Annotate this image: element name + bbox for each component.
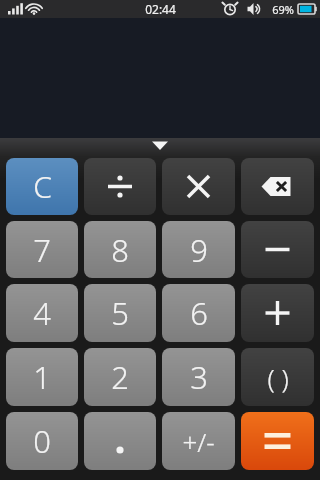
staticText: 0 — [33, 420, 51, 462]
staticText: 69% — [272, 2, 294, 17]
button[interactable]: 5 — [84, 284, 156, 342]
button[interactable]: Plus — [241, 284, 314, 342]
button[interactable]: 2 — [84, 348, 156, 406]
button[interactable]: Multiply — [162, 158, 235, 215]
button[interactable]: Equals — [241, 412, 314, 470]
button[interactable]: C — [6, 158, 78, 215]
staticText: 1 — [33, 356, 51, 398]
button[interactable]: Minus — [241, 221, 314, 278]
staticText: 2 — [111, 356, 129, 398]
button[interactable]: 3 — [162, 348, 235, 406]
button[interactable]: 6 — [162, 284, 235, 342]
staticText: 9 — [190, 229, 208, 271]
staticText: 6 — [190, 292, 208, 334]
button[interactable]: Decimal point — [84, 412, 156, 470]
button[interactable]: 1 — [6, 348, 78, 406]
button[interactable]: 0 — [6, 412, 78, 470]
staticText: C — [33, 166, 52, 207]
button[interactable]: 8 — [84, 221, 156, 278]
button[interactable]: 9 — [162, 221, 235, 278]
button[interactable]: +/- — [162, 412, 235, 470]
button[interactable]: ( ) — [241, 348, 314, 406]
button[interactable]: Divide — [84, 158, 156, 215]
button[interactable]: Backspace — [241, 158, 314, 215]
staticText: ( ) — [267, 360, 289, 395]
button[interactable]: 7 — [6, 221, 78, 278]
staticText: 5 — [111, 292, 129, 334]
staticText: 02:44 — [145, 1, 176, 17]
staticText: +/- — [182, 424, 215, 459]
staticText: 8 — [111, 229, 129, 271]
staticText: 4 — [33, 292, 51, 334]
staticText: 7 — [33, 229, 51, 271]
staticText: 3 — [190, 356, 208, 398]
button[interactable]: 4 — [6, 284, 78, 342]
